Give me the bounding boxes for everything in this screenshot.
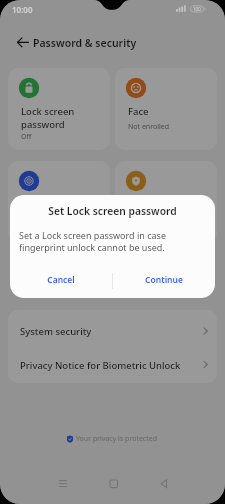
staticText: Continue <box>113 274 215 286</box>
staticText: Cancel <box>10 274 112 286</box>
staticText: Off <box>21 132 32 142</box>
staticText: System security <box>20 325 92 338</box>
staticText: Face <box>128 105 149 118</box>
staticText: 10:00 <box>12 4 33 15</box>
staticText: 100 <box>193 6 201 12</box>
staticText: Your privacy is protected <box>76 434 158 444</box>
staticText: Set Lock screen password <box>10 204 215 218</box>
staticText: Privacy Notice for Biometric Unlock <box>20 359 181 372</box>
staticText: Password & security <box>33 36 137 50</box>
staticText: Set a Lock screen password in case finge… <box>19 229 166 253</box>
staticText: Lock screen password <box>21 105 75 131</box>
staticText: Not enrolled <box>128 122 170 132</box>
